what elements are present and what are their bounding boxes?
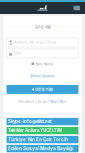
button[interactable]: Skype : info@elitci.net — [6, 118, 78, 125]
button[interactable]: Edilen Sosyal Medya Bayiliği — [6, 145, 78, 152]
button[interactable]: Elitci home — [36, 4, 49, 12]
staticText: Taktikler Ankara YÜCELTİM — [8, 128, 62, 133]
staticText: Edilen Sosyal Medya Bayiliği — [8, 146, 73, 151]
staticText: Hesabınız yok mu? — [18, 100, 49, 103]
button[interactable]: Giriş Yap — [6, 85, 78, 94]
staticText: Giriş Yap — [35, 87, 53, 92]
button[interactable]: Kayıt Olun — [50, 100, 66, 103]
button[interactable]: Menu — [72, 4, 82, 12]
staticText: Skype : info@elitci.net — [8, 119, 52, 124]
button[interactable]: Beni Hatırla — [30, 62, 54, 66]
button[interactable]: Türkiye' Nin En Çok Tercih — [6, 136, 78, 143]
staticText: Giriş Yap — [34, 25, 50, 29]
staticText: Şifremi Unuttum — [30, 74, 55, 78]
staticText: Beni Hatırla — [35, 62, 53, 66]
staticText: Türkiye' Nin En Çok Tercih — [8, 137, 68, 142]
staticText: Kullanıcı Adı veya E-Posta — [14, 41, 56, 44]
staticText: Şifre — [14, 52, 21, 55]
staticText: Kayıt Olun — [50, 100, 66, 103]
button[interactable]: Şifremi Unuttum — [29, 74, 56, 78]
button[interactable]: Kullanıcı Adı veya E-Posta — [6, 38, 78, 47]
button[interactable]: Şifre — [6, 49, 78, 58]
button[interactable]: Taktikler Ankara YÜCELTİM — [6, 127, 78, 134]
